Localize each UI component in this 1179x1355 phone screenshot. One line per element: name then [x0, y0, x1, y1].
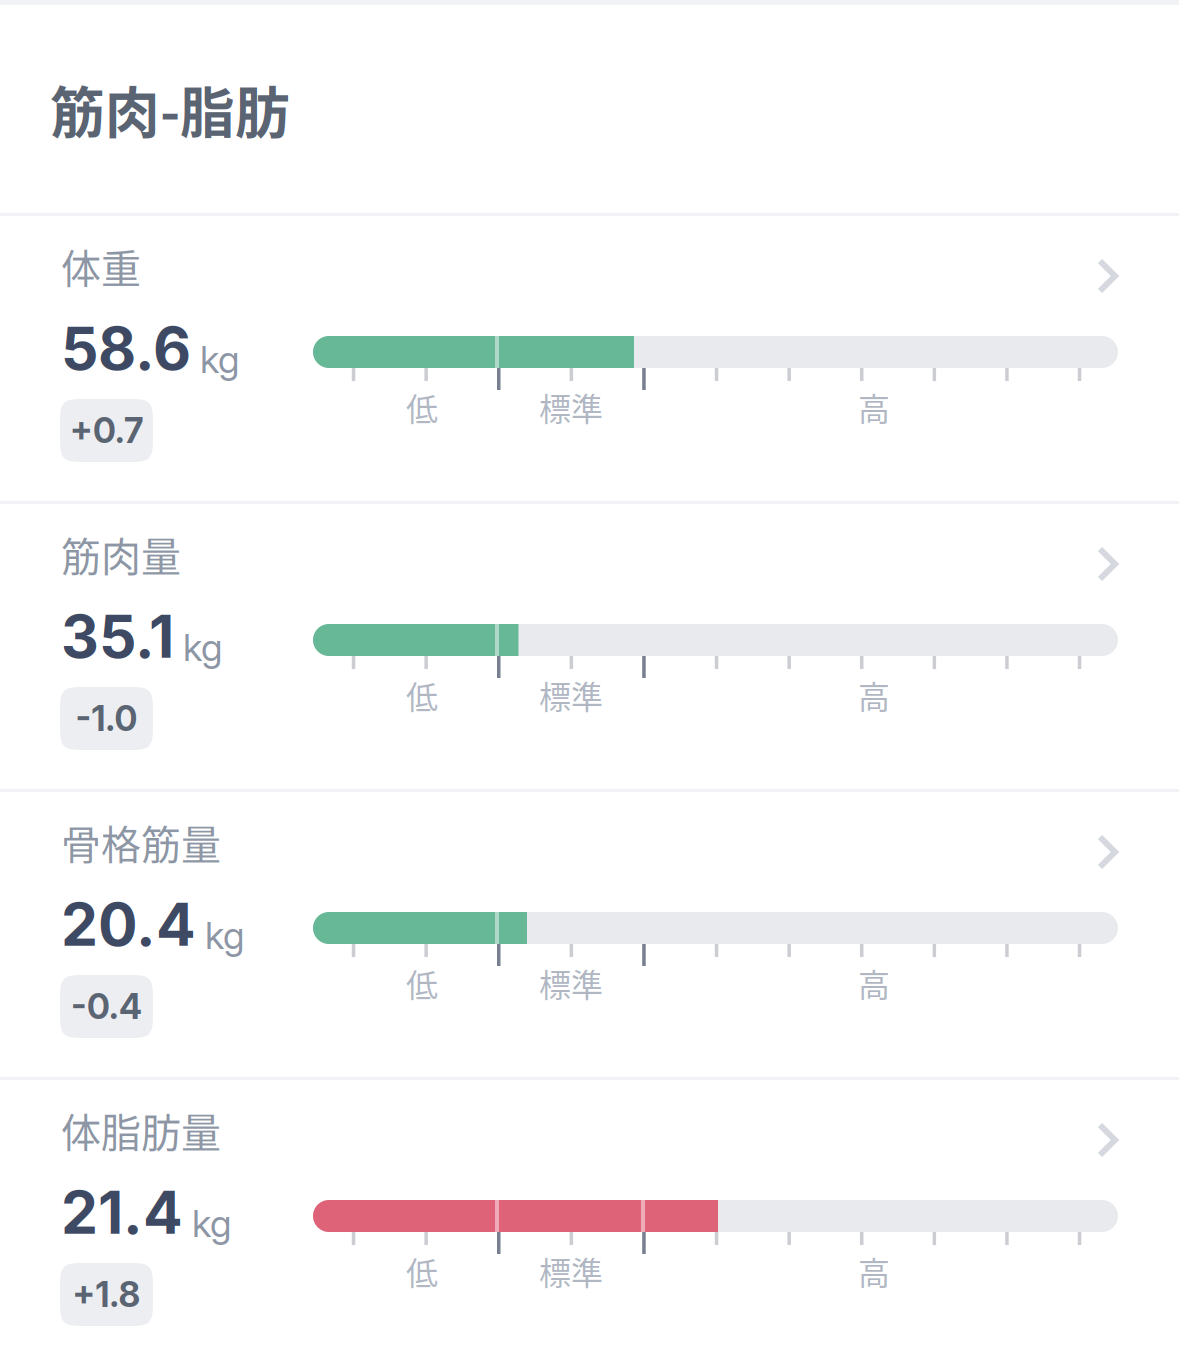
- staticText: kg: [200, 337, 240, 382]
- staticText: +0.7: [70, 409, 143, 451]
- button[interactable]: 骨格筋量: [0, 789, 1179, 1077]
- staticText: 21.4: [61, 1177, 183, 1248]
- staticText: 低: [406, 1248, 438, 1294]
- staticText: 高: [858, 960, 890, 1006]
- staticText: 標準: [539, 384, 603, 430]
- button[interactable]: 筋肉量: [0, 501, 1179, 789]
- staticText: 低: [406, 384, 438, 430]
- staticText: +1.8: [72, 1273, 140, 1315]
- staticText: 体脂肪量: [61, 1101, 221, 1159]
- staticText: 低: [406, 960, 438, 1006]
- staticText: 体重: [61, 237, 141, 295]
- staticText: 筋肉-脂肪: [50, 69, 290, 148]
- staticText: 標準: [539, 960, 603, 1006]
- staticText: 20.4: [61, 889, 196, 960]
- staticText: 高: [858, 384, 890, 430]
- staticText: -1.0: [75, 697, 137, 739]
- staticText: 35.1: [61, 601, 174, 672]
- staticText: 高: [858, 1248, 890, 1294]
- staticText: 高: [858, 672, 890, 718]
- button[interactable]: 体脂肪量: [0, 1077, 1179, 1355]
- button[interactable]: 体重: [0, 213, 1179, 501]
- staticText: kg: [205, 913, 245, 958]
- staticText: kg: [192, 1201, 232, 1246]
- staticText: 筋肉量: [61, 525, 181, 583]
- staticText: -0.4: [71, 985, 142, 1027]
- staticText: 骨格筋量: [61, 813, 221, 871]
- staticText: kg: [183, 625, 223, 670]
- staticText: 58.6: [61, 313, 191, 384]
- staticText: 標準: [539, 672, 603, 718]
- staticText: 低: [406, 672, 438, 718]
- staticText: 標準: [539, 1248, 603, 1294]
